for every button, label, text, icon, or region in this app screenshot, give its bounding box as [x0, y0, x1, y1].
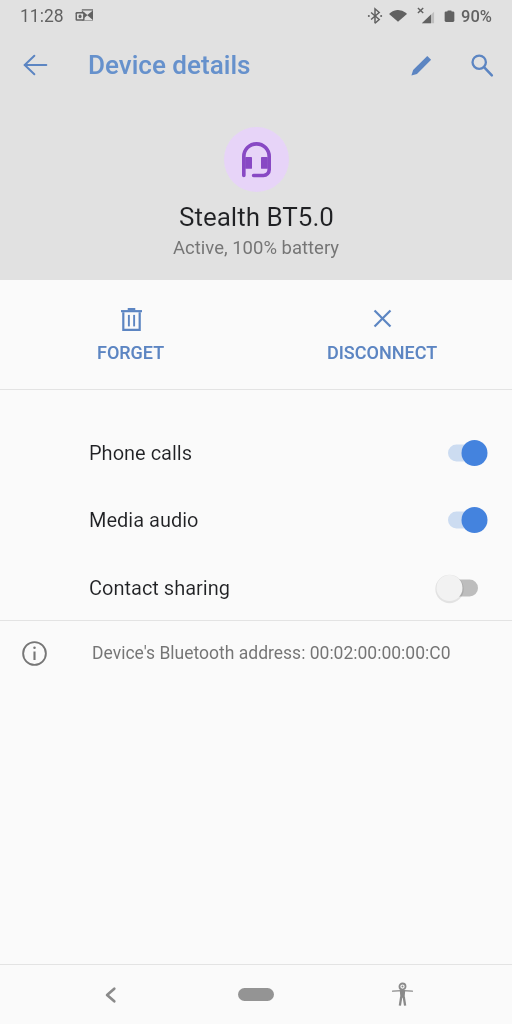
- button[interactable]: Home: [206, 965, 306, 1024]
- button[interactable]: Search: [458, 41, 505, 88]
- button[interactable]: Media audio: [0, 486, 512, 553]
- staticText: Device's Bluetooth address: 00:02:00:00:…: [92, 643, 451, 664]
- staticText: FORGET: [97, 342, 165, 363]
- staticText: Media audio: [89, 508, 199, 531]
- button[interactable]: Contact sharing: [0, 554, 512, 621]
- staticText: Stealth BT5.0: [179, 202, 334, 232]
- staticText: Contact sharing: [89, 576, 230, 599]
- button[interactable]: DISCONNECT: [256, 280, 508, 389]
- button[interactable]: Back: [60, 965, 160, 1024]
- button[interactable]: Contact sharing off: [433, 573, 489, 603]
- button[interactable]: Back: [12, 41, 59, 88]
- button[interactable]: Rename device: [398, 41, 445, 88]
- staticText: 11:28: [20, 6, 64, 27]
- button[interactable]: Accessibility: [352, 965, 452, 1024]
- staticText: DISCONNECT: [327, 342, 438, 363]
- staticText: Device details: [88, 50, 251, 80]
- staticText: 90%: [461, 7, 492, 26]
- button[interactable]: Phone calls on: [433, 438, 489, 468]
- button[interactable]: Phone calls: [0, 419, 512, 486]
- button[interactable]: Media audio on: [433, 505, 489, 535]
- button[interactable]: FORGET: [0, 280, 262, 389]
- staticText: Phone calls: [89, 441, 193, 464]
- staticText: Active, 100% battery: [173, 237, 340, 259]
